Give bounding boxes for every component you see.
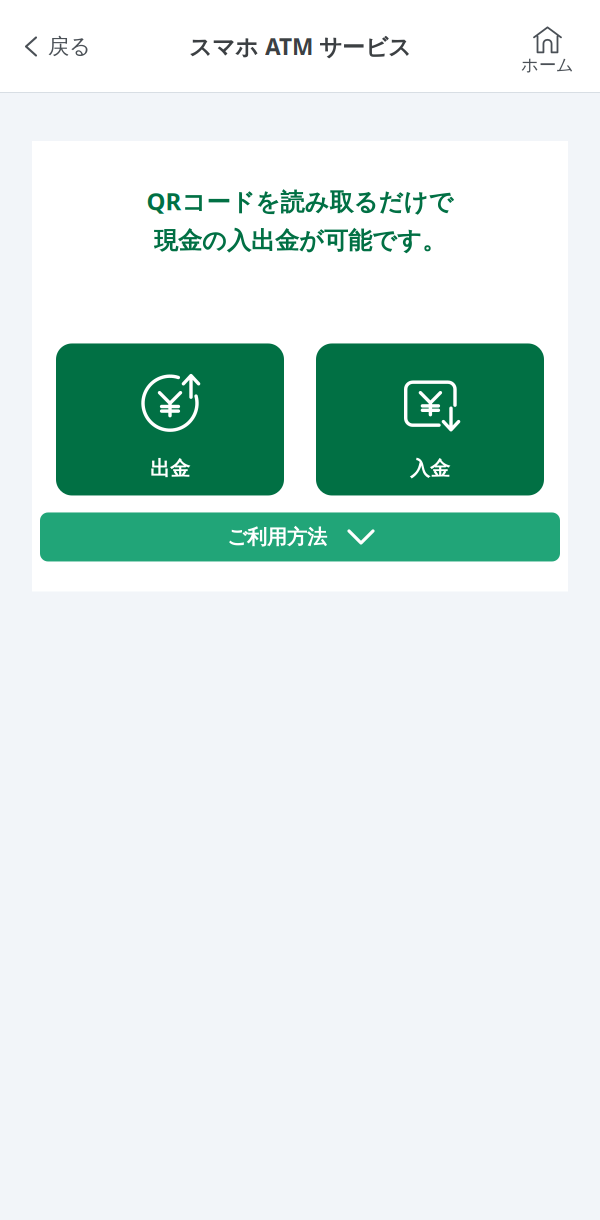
staticText: 入金	[410, 456, 450, 481]
staticText: ホーム	[521, 54, 574, 76]
staticText: QRコードを読み取るだけで	[146, 185, 453, 217]
button[interactable]: ご利用方法	[40, 512, 560, 561]
staticText: 現金の入出金が可能です。	[154, 226, 446, 255]
button[interactable]: 戻る	[0, 0, 109, 93]
staticText: 出金	[150, 456, 190, 481]
staticText: ご利用方法	[227, 525, 327, 549]
button[interactable]: ホーム	[504, 0, 600, 93]
staticText: スマホ ATM サービス	[189, 31, 411, 61]
button[interactable]: 出金	[56, 343, 284, 495]
staticText: 戻る	[48, 33, 91, 60]
button[interactable]: 入金	[316, 343, 544, 495]
